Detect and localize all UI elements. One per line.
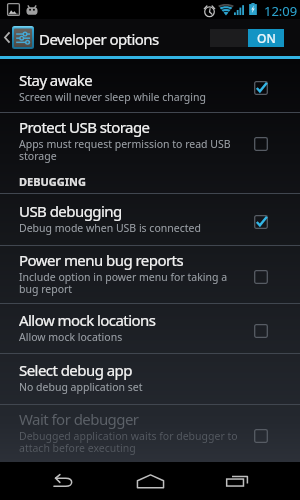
staticText: Debugged application waits for debugger … (19, 429, 238, 455)
button[interactable]: Recents (216, 462, 262, 500)
staticText: DEBUGGING (19, 174, 86, 189)
button[interactable]: Wait for debugger (0, 405, 300, 462)
staticText: Debug mode when USB is connected (19, 221, 201, 235)
staticText: Stay awake (19, 70, 93, 90)
staticText: Select debug app (19, 360, 132, 380)
button[interactable]: Protect USB storage (0, 113, 300, 170)
button[interactable]: Developer options on (210, 29, 284, 47)
staticText: Wait for debugger (19, 409, 139, 429)
staticText: Allow mock locations (19, 310, 156, 330)
button[interactable]: USB debugging (0, 194, 300, 245)
button[interactable]: Home (127, 462, 173, 500)
staticText: ON (257, 30, 276, 46)
button[interactable]: Stay awake (0, 59, 300, 112)
button[interactable]: Navigate up (0, 19, 300, 56)
staticText: Include option in power menu for taking … (19, 270, 228, 296)
staticText: Screen will never sleep while charging (19, 90, 206, 104)
staticText: Power menu bug reports (19, 250, 184, 270)
staticText: Developer options (39, 29, 159, 49)
staticText: USB debugging (19, 201, 122, 221)
staticText: Protect USB storage (19, 117, 150, 137)
button[interactable]: Power menu bug reports (0, 246, 300, 303)
button[interactable]: Allow mock locations (0, 304, 300, 353)
staticText: 12:09 (264, 2, 298, 20)
button[interactable]: Select debug app (0, 354, 300, 404)
button[interactable]: Back (38, 462, 84, 500)
staticText: Apps must request permission to read USB… (19, 137, 231, 163)
staticText: No debug application set (19, 380, 143, 394)
staticText: Allow mock locations (19, 330, 123, 344)
